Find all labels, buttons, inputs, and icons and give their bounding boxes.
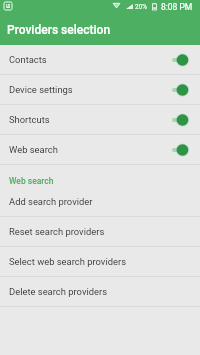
button[interactable]: Select web search providers — [0, 247, 200, 277]
staticText: Web search — [9, 176, 54, 186]
staticText: Select web search providers — [9, 256, 127, 267]
button[interactable]: Device settings — [0, 75, 200, 105]
staticText: 20% — [135, 3, 148, 11]
button[interactable]: Reset search providers — [0, 217, 200, 247]
button[interactable]: Web search — [0, 135, 200, 165]
button[interactable]: Shortcuts — [0, 105, 200, 135]
button[interactable]: Toggle Shortcuts — [169, 107, 194, 133]
button[interactable]: Add search provider — [0, 187, 200, 217]
staticText: Reset search providers — [9, 226, 105, 237]
staticText: Providers selection — [7, 23, 111, 37]
button[interactable]: Toggle Device settings — [169, 77, 194, 103]
other: Screenshot notification — [4, 2, 12, 10]
staticText: Web search — [9, 144, 58, 155]
button[interactable]: Contacts — [0, 45, 200, 75]
button[interactable]: Toggle Contacts — [169, 47, 194, 73]
staticText: 8:08 PM — [161, 2, 193, 12]
staticText: Contacts — [9, 54, 47, 65]
other: Signal — [126, 4, 133, 9]
staticText: Delete search providers — [9, 286, 108, 297]
other: Wi-Fi — [113, 2, 120, 8]
staticText: Add search provider — [9, 196, 93, 207]
staticText: Shortcuts — [9, 114, 50, 125]
button[interactable]: Toggle Web search — [169, 137, 194, 163]
staticText: Device settings — [9, 84, 73, 95]
other: Battery — [152, 3, 157, 10]
button[interactable]: Delete search providers — [0, 277, 200, 307]
